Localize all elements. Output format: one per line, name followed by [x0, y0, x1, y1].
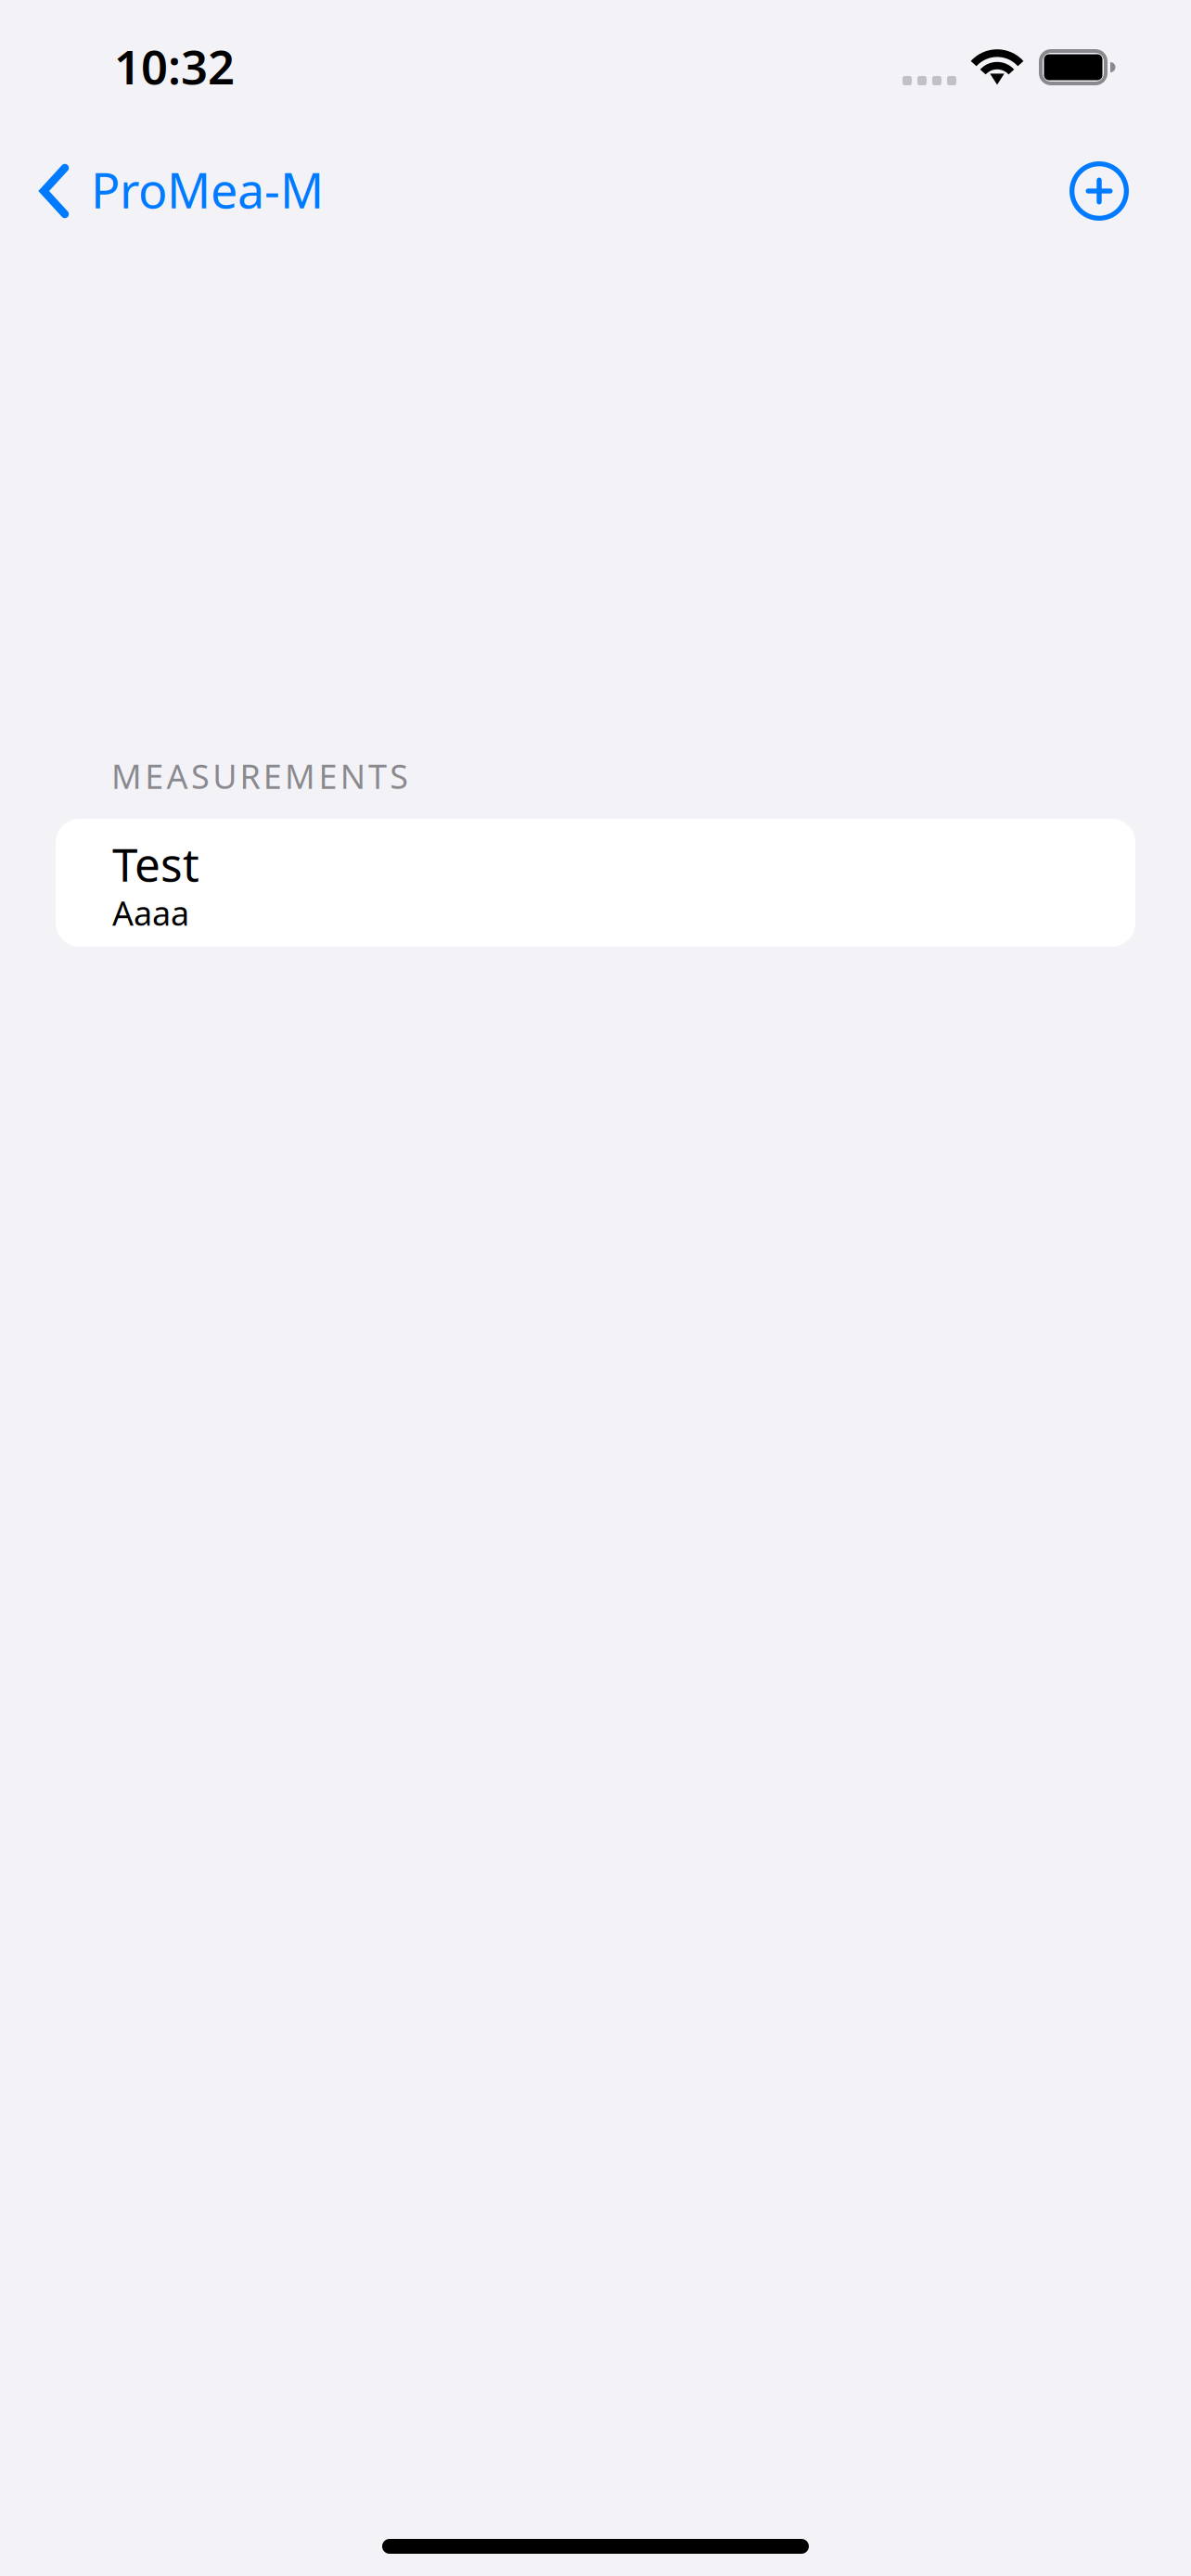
button[interactable]: Add measurement	[1047, 150, 1191, 232]
button[interactable]: ProMea-M	[0, 150, 342, 232]
staticText: ProMea-M	[91, 158, 324, 222]
staticText: Test	[112, 833, 199, 894]
staticText: MEASUREMENTS	[111, 754, 408, 798]
button[interactable]: Test	[56, 819, 1135, 947]
staticText: Aaaa	[112, 890, 189, 935]
staticText: 10:32	[114, 35, 235, 97]
